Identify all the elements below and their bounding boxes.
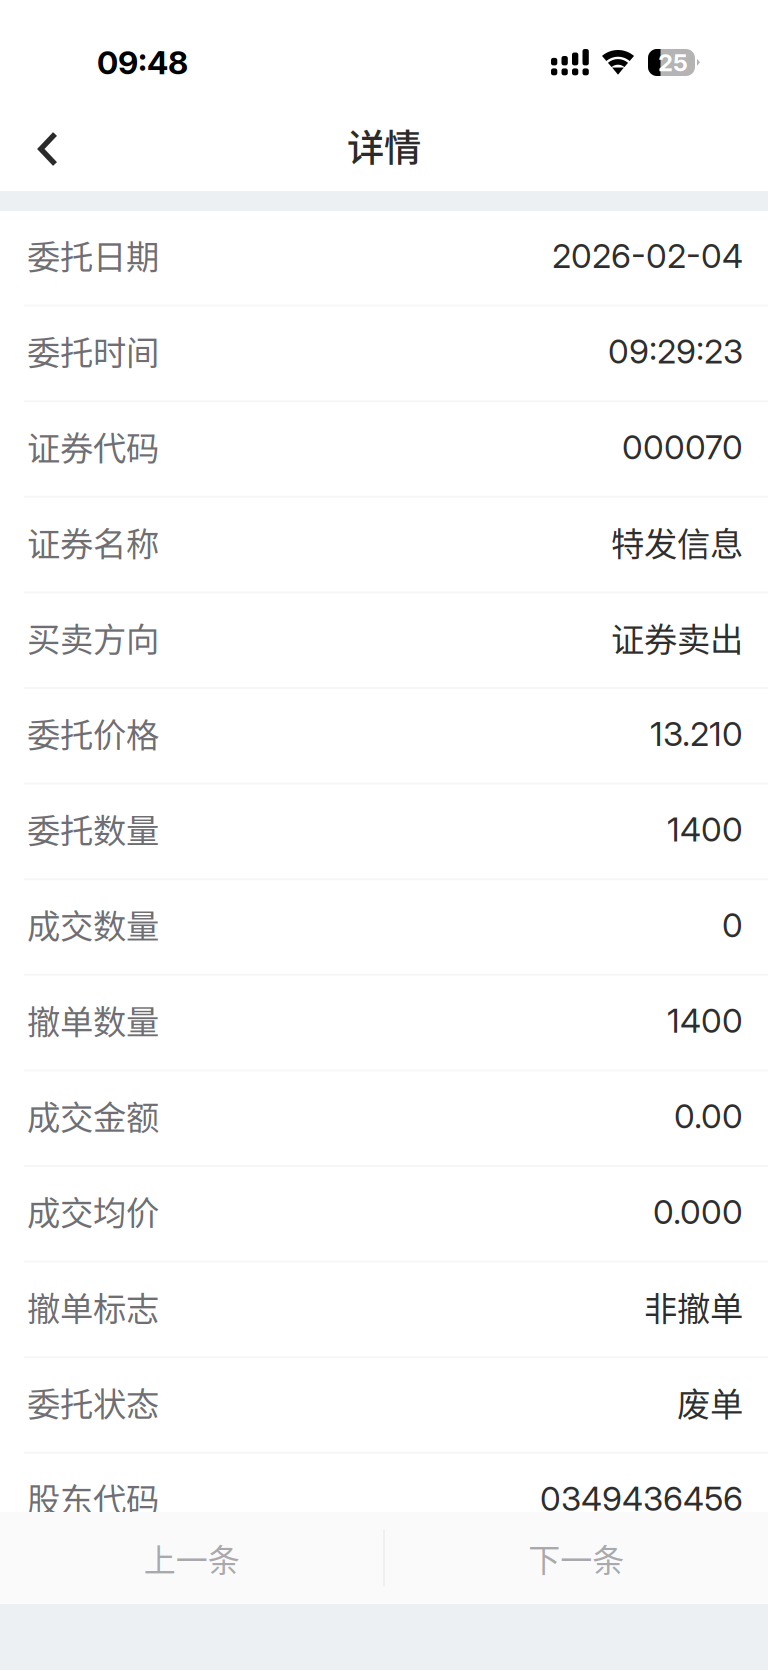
staticText: 证券名称 [27,517,159,566]
staticText: 09:48 [97,43,188,82]
staticText: 非撤单 [644,1282,743,1331]
staticText: 成交数量 [27,900,159,948]
staticText: 0.00 [674,1096,743,1136]
staticText: 000070 [622,427,743,467]
staticText: 0.000 [653,1192,743,1232]
staticText: 特发信息 [611,517,743,566]
staticText: 2026-02-04 [552,236,743,276]
staticText: 撤单标志 [27,1282,159,1331]
button[interactable]: 上一条 [0,1512,383,1604]
staticText: 股东代码 [27,1473,159,1522]
button[interactable]: 下一条 [384,1512,768,1604]
staticText: 1400 [667,809,743,849]
button[interactable]: Back [0,100,92,191]
staticText: 证券代码 [27,422,159,470]
staticText: 下一条 [528,1535,624,1581]
staticText: 25 [658,48,688,77]
staticText: 成交均价 [27,1187,159,1235]
staticText: 废单 [677,1378,743,1426]
staticText: 0349436456 [540,1478,743,1519]
staticText: 撤单数量 [27,995,159,1044]
staticText: 成交金额 [27,1091,159,1139]
staticText: 09:29:23 [608,331,743,371]
staticText: 详情 [347,118,421,173]
staticText: 0 [722,905,743,945]
staticText: 买卖方向 [27,613,159,661]
staticText: 13.210 [650,714,743,754]
staticText: 证券卖出 [611,613,743,661]
staticText: 委托状态 [27,1378,159,1426]
staticText: 委托数量 [27,804,159,853]
staticText: 深圳A股 [624,1569,743,1617]
staticText: 委托时间 [27,326,159,375]
staticText: 交易市场 [27,1569,159,1617]
staticText: 委托日期 [27,231,159,279]
staticText: 上一条 [144,1535,240,1581]
staticText: 委托价格 [27,709,159,757]
staticText: 1400 [667,1000,743,1041]
